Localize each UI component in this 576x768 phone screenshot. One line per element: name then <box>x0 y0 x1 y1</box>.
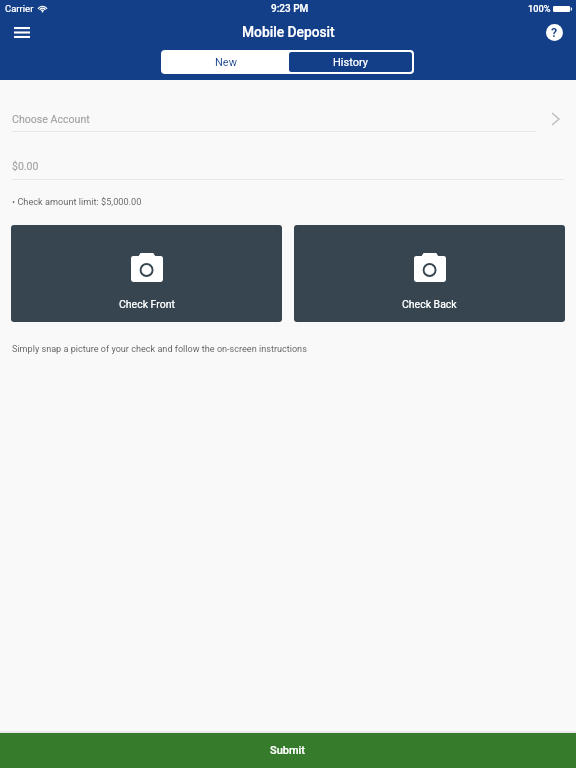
button[interactable]: New <box>163 52 289 72</box>
staticText: New <box>215 56 237 69</box>
button[interactable]: History <box>289 52 412 72</box>
staticText: History <box>333 56 368 69</box>
staticText: ? <box>551 25 558 40</box>
staticText: 100% <box>528 3 551 14</box>
staticText: $0.00 <box>12 160 39 172</box>
button[interactable]: Check Front <box>11 225 282 322</box>
staticText: Simply snap a picture of your check and … <box>12 344 307 355</box>
staticText: Check Front <box>119 298 175 310</box>
staticText: • Check amount limit: $5,000.00 <box>12 196 142 207</box>
button[interactable]: Menu <box>4 17 40 47</box>
button[interactable]: Check Back <box>294 225 565 322</box>
staticText: Submit <box>270 744 306 757</box>
staticText: Check Back <box>402 298 457 310</box>
staticText: Mobile Deposit <box>242 24 335 40</box>
staticText: Carrier <box>5 3 34 14</box>
button[interactable]: $0.00 <box>0 132 576 180</box>
button[interactable]: Help <box>538 17 570 47</box>
staticText: Choose Account <box>12 113 90 125</box>
button[interactable]: Choose Account <box>0 85 576 132</box>
button[interactable]: Submit <box>0 733 576 768</box>
staticText: 9:23 PM <box>271 3 309 15</box>
